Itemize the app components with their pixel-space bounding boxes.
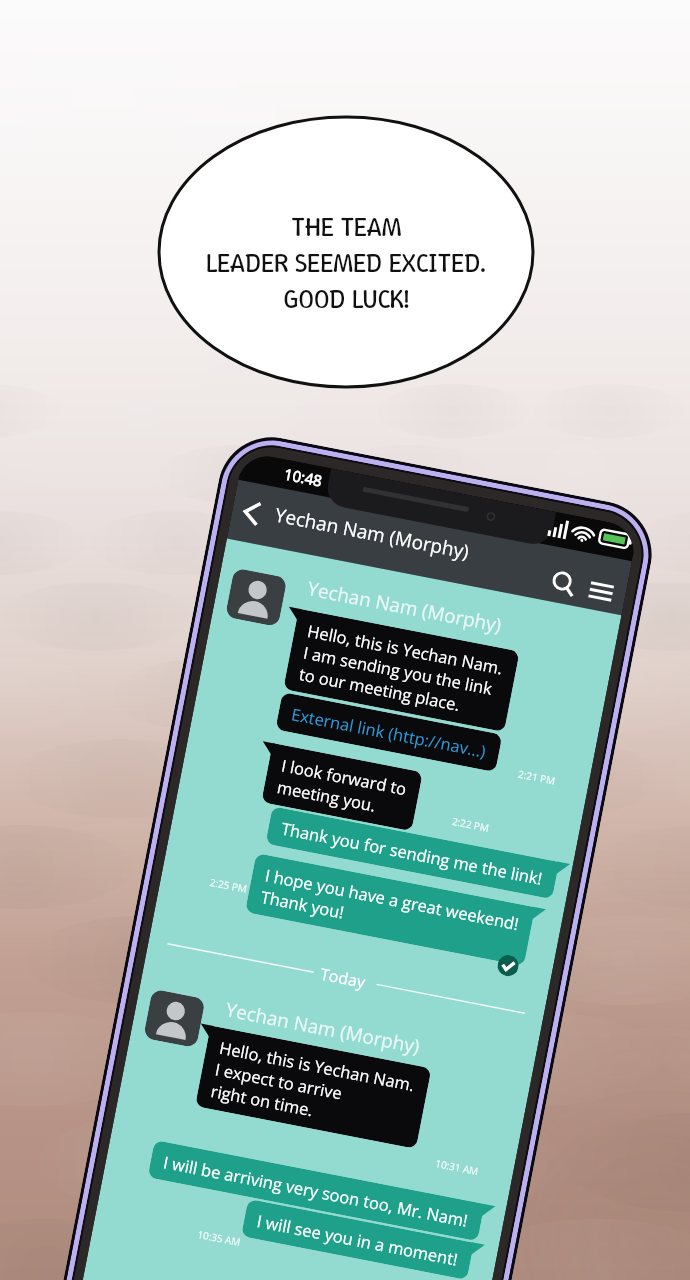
- button[interactable]: I will see you in a moment!: [255, 1209, 460, 1270]
- button[interactable]: Read receipt: [496, 953, 520, 978]
- staticText: I hope you have a great weekend!: [263, 863, 521, 934]
- staticText: right on time.: [209, 1079, 316, 1120]
- staticText: 2:25 PM: [209, 875, 249, 896]
- staticText: Yechan Nam (Morphy): [305, 575, 504, 638]
- staticText: I look forward to: [280, 753, 409, 799]
- button[interactable]: I will be arriving very soon too, Mr. Na…: [162, 1150, 470, 1231]
- button[interactable]: Hello, this is Yechan Nam.: [209, 1036, 417, 1139]
- button[interactable]: Search: [547, 567, 581, 601]
- staticText: 2:22 PM: [451, 814, 491, 835]
- button[interactable]: Menu: [584, 574, 618, 608]
- staticText: 2:21 PM: [517, 767, 557, 788]
- staticText: I expect to arrive: [213, 1057, 344, 1104]
- staticText: Hello, this is Yechan Nam.: [306, 619, 505, 679]
- button[interactable]: Profile photo: [143, 989, 206, 1048]
- staticText: 10:48: [282, 464, 324, 491]
- staticText: I will see you in a moment!: [255, 1209, 460, 1270]
- staticText: Yechan Nam (Morphy): [224, 996, 422, 1059]
- staticText: LEADER SEEMED EXCITED.: [206, 245, 486, 281]
- button[interactable]: Profile photo: [225, 568, 287, 627]
- button[interactable]: Back: [233, 494, 271, 532]
- staticText: to our meeting place.: [297, 662, 463, 715]
- button[interactable]: External link (http://nav...): [290, 702, 488, 762]
- staticText: Yechan Nam (Morphy): [273, 502, 471, 565]
- button[interactable]: Hello, this is Yechan Nam.: [297, 619, 505, 722]
- staticText: THE TEAM: [291, 209, 402, 245]
- staticText: GOOD LUCK!: [283, 281, 410, 317]
- staticText: meeting you.: [275, 775, 378, 816]
- button[interactable]: I hope you have a great weekend!: [259, 863, 521, 956]
- staticText: 10:35 AM: [196, 1227, 242, 1249]
- staticText: Thank you for sending me the link!: [280, 817, 545, 889]
- button[interactable]: I look forward to: [275, 753, 409, 821]
- staticText: I will be arriving very soon too, Mr. Na…: [162, 1150, 470, 1231]
- staticText: External link (http://nav...): [290, 702, 488, 762]
- staticText: I am sending you the link: [302, 641, 494, 699]
- button[interactable]: Thank you for sending me the link!: [280, 817, 545, 889]
- staticText: 10:31 AM: [434, 1156, 480, 1178]
- staticText: Thank you!: [259, 885, 347, 923]
- staticText: Hello, this is Yechan Nam.: [218, 1036, 417, 1095]
- staticText: Today: [318, 963, 368, 993]
